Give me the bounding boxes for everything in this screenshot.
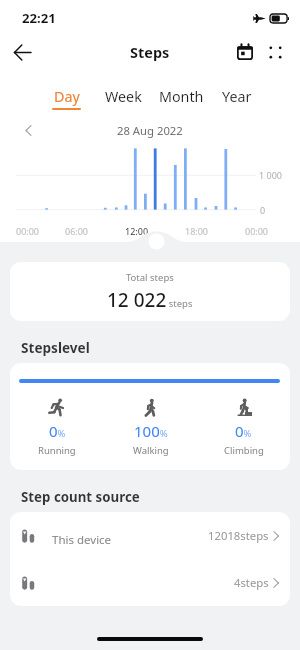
staticText: This device: [52, 532, 112, 548]
staticText: 1 000: [259, 169, 282, 181]
staticText: 06:00: [65, 225, 89, 237]
staticText: 12:00: [125, 225, 149, 237]
staticText: Year: [222, 87, 252, 106]
button[interactable]: Total steps: [10, 262, 290, 321]
button[interactable]: Back: [6, 36, 38, 68]
button[interactable]: Month: [157, 87, 206, 106]
staticText: 0%: [235, 421, 252, 441]
staticText: 18:00: [185, 225, 209, 237]
staticText: 0%: [49, 421, 66, 441]
button[interactable]: Day: [50, 87, 83, 110]
staticText: Climbing: [224, 444, 264, 457]
staticText: Running: [38, 444, 76, 457]
staticText: Total steps: [126, 271, 174, 284]
button[interactable]: 0%: [10, 398, 104, 457]
staticText: 00:00: [245, 225, 269, 237]
staticText: Week: [105, 87, 142, 106]
staticText: Walking: [133, 444, 169, 457]
staticText: 22:21: [22, 9, 56, 27]
staticText: 00:00: [16, 225, 40, 237]
button[interactable]: 100%: [104, 398, 197, 457]
staticText: Steps: [130, 42, 170, 62]
button[interactable]: 4steps: [10, 559, 290, 606]
button[interactable]: This device: [10, 512, 290, 559]
staticText: Step count source: [21, 488, 140, 506]
button[interactable]: Previous day: [16, 118, 40, 142]
staticText: 12018steps: [208, 528, 269, 543]
button[interactable]: Year: [220, 87, 254, 106]
staticText: Day: [54, 87, 80, 106]
staticText: 28 Aug 2022: [117, 123, 183, 138]
button[interactable]: Calendar: [229, 36, 261, 68]
staticText: Month: [159, 87, 204, 106]
staticText: 4steps: [234, 575, 269, 590]
button[interactable]: 0%: [197, 398, 290, 457]
staticText: 100%: [134, 421, 168, 441]
staticText: Stepslevel: [21, 338, 90, 357]
staticText: 0: [260, 204, 266, 216]
staticText: 12 022 steps: [107, 287, 193, 313]
button[interactable]: Week: [103, 87, 144, 106]
button[interactable]: More options: [259, 36, 291, 68]
